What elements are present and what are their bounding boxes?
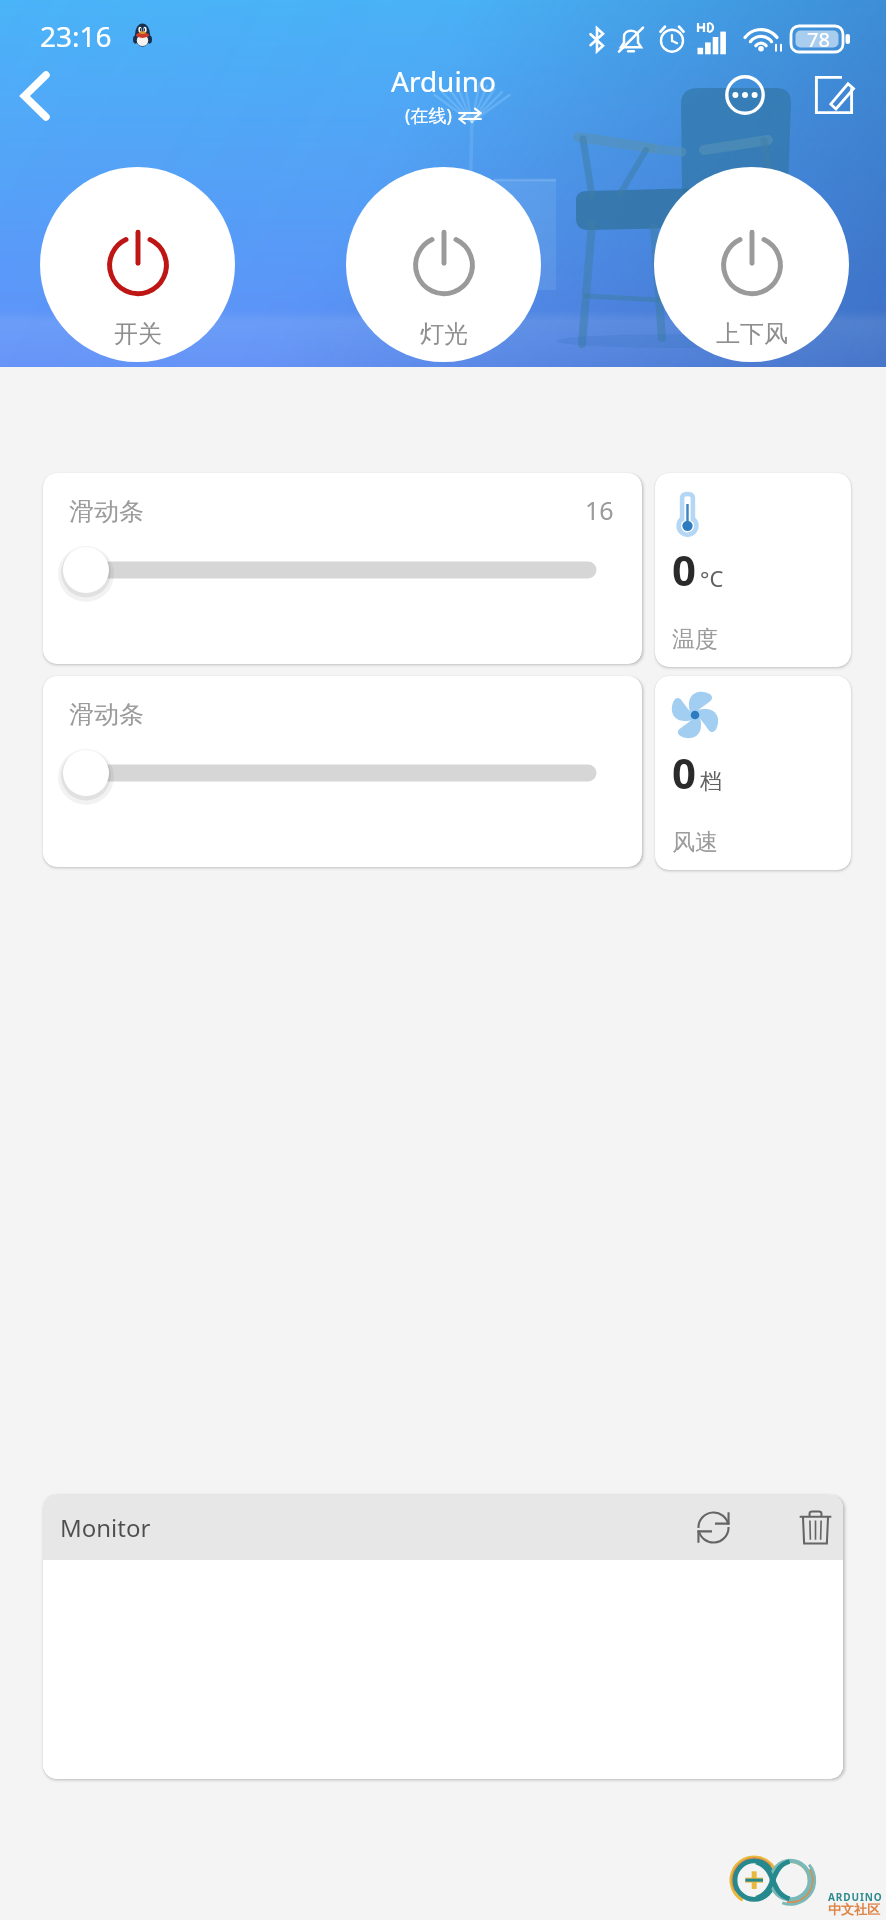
button[interactable]: Delete xyxy=(785,1494,843,1560)
button[interactable]: More options xyxy=(713,63,777,127)
staticText: 0 xyxy=(672,541,697,598)
staticText: 开关 xyxy=(114,319,162,349)
staticText: Arduino xyxy=(391,62,496,100)
staticText: 78 xyxy=(807,26,830,53)
button[interactable]: 灯光 xyxy=(346,167,541,362)
staticText: 滑动条 xyxy=(69,496,144,527)
staticText: 中文社区 xyxy=(828,1901,880,1917)
staticText: 灯光 xyxy=(420,319,468,349)
staticText: 上下风 xyxy=(716,319,788,349)
staticText: Monitor xyxy=(60,1511,151,1544)
button[interactable]: 0 xyxy=(655,676,851,870)
button[interactable]: Back xyxy=(3,63,67,127)
staticText: ARDUINO xyxy=(828,1890,883,1904)
button[interactable]: Refresh xyxy=(683,1494,743,1560)
staticText: 0 xyxy=(672,744,697,801)
button[interactable]: Edit xyxy=(802,63,866,127)
staticText: 档 xyxy=(700,768,722,796)
staticText: 温度 xyxy=(672,625,718,654)
staticText: °C xyxy=(700,563,724,593)
button[interactable]: 开关 xyxy=(40,167,235,362)
button[interactable]: 滑动条 xyxy=(43,676,642,867)
button[interactable]: 0 xyxy=(655,473,851,667)
staticText: 风速 xyxy=(672,828,718,857)
staticText: (在线) xyxy=(405,103,452,128)
button[interactable]: 上下风 xyxy=(654,167,849,362)
staticText: 滑动条 xyxy=(69,699,144,730)
staticText: 16 xyxy=(585,493,614,527)
staticText: 23:16 xyxy=(40,17,112,55)
button[interactable]: 滑动条 xyxy=(43,473,642,664)
